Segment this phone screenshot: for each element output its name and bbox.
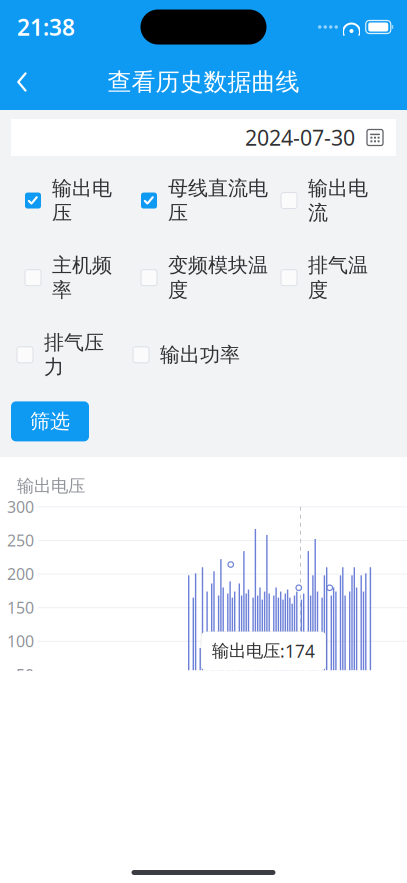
staticText: 变频模块温度 [168, 253, 268, 302]
button[interactable]: 2024-07-30 [11, 119, 396, 156]
staticText: 排气压力 [44, 330, 104, 379]
staticText: 查看历史数据曲线 [107, 67, 299, 97]
button[interactable]: 变频模块温度 [141, 247, 281, 308]
staticText: 250 [7, 530, 34, 551]
staticText: 筛选 [30, 409, 70, 434]
staticText: 输出电压 [52, 176, 112, 225]
staticText: 2024-07-30 [245, 123, 355, 152]
button[interactable]: 排气温度 [281, 247, 391, 308]
staticText: 输出电压 [212, 640, 280, 662]
button[interactable]: 筛选 [11, 401, 89, 441]
button[interactable]: 返回 [0, 60, 44, 104]
staticText: :174 [280, 639, 315, 662]
staticText: 100 [7, 630, 34, 652]
button[interactable]: 输出电压 [25, 170, 141, 231]
staticText: 输出功率 [160, 342, 240, 367]
staticText: 50 [16, 664, 34, 685]
staticText: 输出电压 [17, 475, 85, 497]
staticText: 母线直流电压 [168, 176, 268, 225]
button[interactable]: 输出电流 [281, 170, 391, 231]
staticText: 200 [7, 563, 34, 584]
staticText: 300 [7, 496, 34, 517]
button[interactable]: 主机频率 [25, 247, 141, 308]
staticText: 排气温度 [308, 253, 368, 302]
staticText: 主机频率 [52, 253, 112, 302]
staticText: 输出电流 [308, 176, 368, 225]
button[interactable]: 母线直流电压 [141, 170, 281, 231]
staticText: 150 [7, 597, 34, 618]
button[interactable]: 排气压力 [17, 324, 133, 385]
staticText: 21:38 [17, 12, 75, 42]
button[interactable]: 输出功率 [133, 336, 273, 373]
